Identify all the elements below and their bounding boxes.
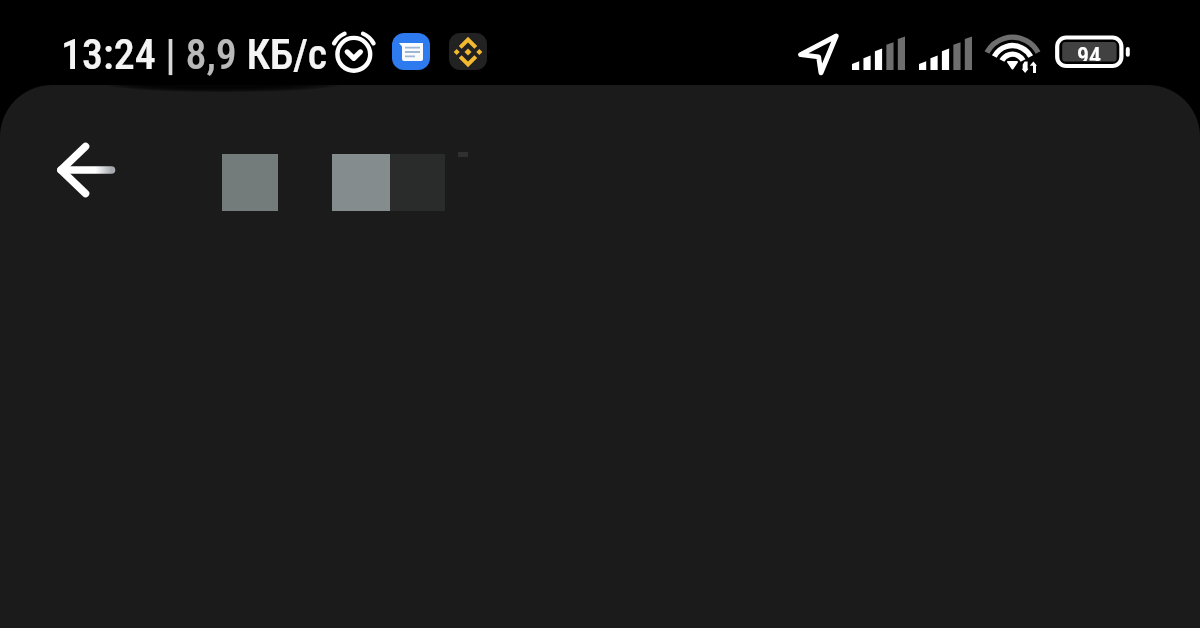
staticText: 94 <box>1077 42 1101 61</box>
button[interactable]: Back <box>57 141 115 199</box>
staticText: 13:24 | 8,9 КБ/с <box>61 30 328 79</box>
